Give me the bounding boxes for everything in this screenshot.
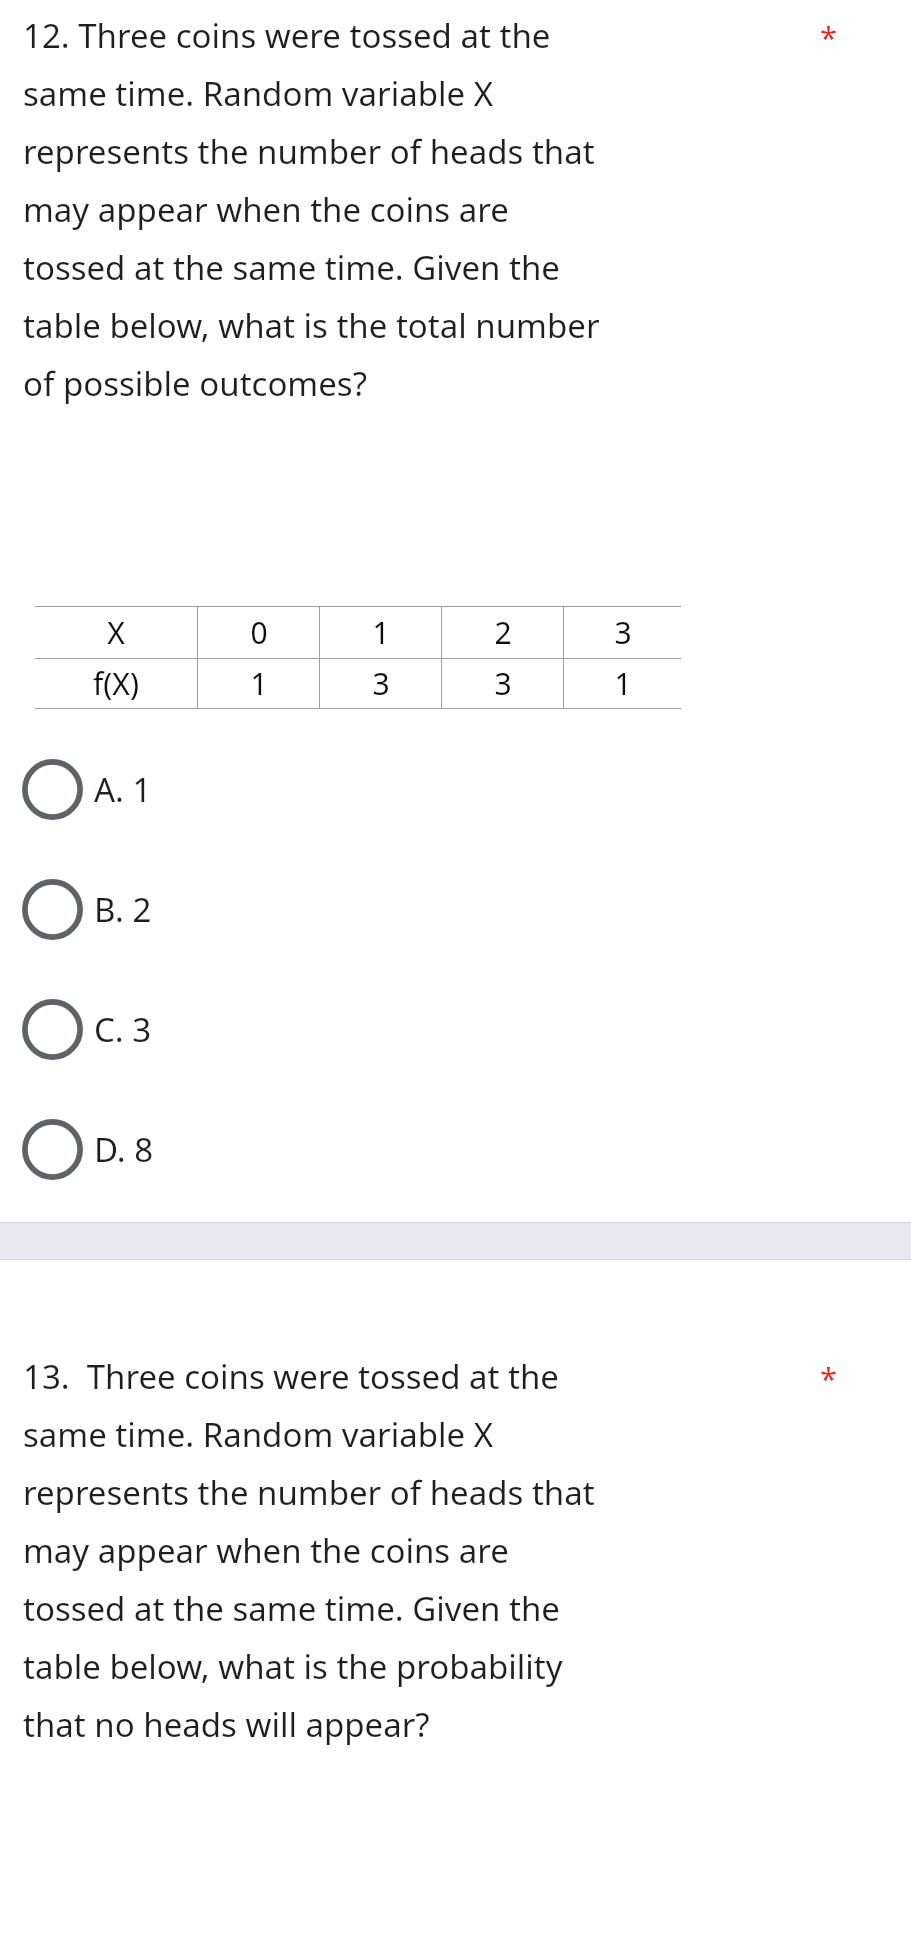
staticText: B. 2 bbox=[94, 887, 152, 932]
staticText: C. 3 bbox=[94, 1007, 152, 1052]
staticText: 2 bbox=[494, 612, 512, 653]
staticText: tossed at the same time. Given the bbox=[23, 1586, 560, 1631]
staticText: D. 8 bbox=[94, 1127, 154, 1172]
staticText: 1 bbox=[250, 663, 268, 704]
staticText: tossed at the same time. Given the bbox=[23, 245, 560, 290]
staticText: * bbox=[820, 16, 838, 58]
button[interactable]: C. 3 bbox=[0, 969, 911, 1089]
staticText: * bbox=[820, 1357, 838, 1399]
button[interactable]: A. 1 bbox=[0, 729, 911, 849]
staticText: 1 bbox=[614, 663, 632, 704]
staticText: A. 1 bbox=[94, 767, 152, 812]
staticText: same time. Random variable X bbox=[23, 1412, 494, 1457]
staticText: 3 bbox=[372, 663, 390, 704]
staticText: of possible outcomes? bbox=[23, 361, 367, 406]
staticText: same time. Random variable X bbox=[23, 71, 494, 116]
staticText: represents the number of heads that bbox=[23, 129, 595, 174]
staticText: 0 bbox=[250, 612, 268, 653]
staticText: table below, what is the probability bbox=[23, 1644, 563, 1689]
staticText: 3 bbox=[614, 612, 632, 653]
staticText: table below, what is the total number bbox=[23, 303, 600, 348]
staticText: 13. Three coins were tossed at the bbox=[23, 1354, 559, 1399]
staticText: may appear when the coins are bbox=[23, 1528, 509, 1573]
staticText: f(X) bbox=[93, 663, 139, 704]
staticText: represents the number of heads that bbox=[23, 1470, 595, 1515]
button[interactable]: B. 2 bbox=[0, 849, 911, 969]
staticText: that no heads will appear? bbox=[23, 1702, 430, 1747]
staticText: 12. Three coins were tossed at the bbox=[23, 13, 551, 58]
button[interactable]: D. 8 bbox=[0, 1089, 911, 1209]
staticText: 1 bbox=[372, 612, 390, 653]
staticText: 3 bbox=[494, 663, 512, 704]
staticText: may appear when the coins are bbox=[23, 187, 509, 232]
staticText: X bbox=[107, 612, 125, 653]
